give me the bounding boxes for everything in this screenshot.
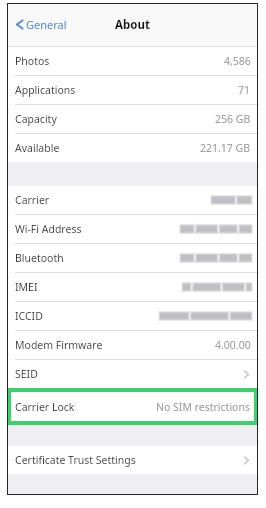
staticText: No SIM restrictions [156,400,250,414]
button[interactable]: General [14,12,69,37]
button[interactable]: Certificate Trust Settings [7,446,258,474]
button[interactable]: Photos [7,47,258,75]
staticText: IMEI [15,280,38,294]
staticText: Photos [15,54,50,68]
button[interactable]: ICCID [7,302,258,330]
button[interactable]: Wi-Fi Address [7,215,258,243]
staticText: Carrier Lock [15,400,75,414]
button[interactable]: SEID [7,360,258,388]
staticText: 4.00.00 [215,338,251,352]
button[interactable]: Carrier [7,186,258,214]
button[interactable]: Available [7,134,258,162]
staticText: Available [15,141,60,155]
other: Carrier Lock highlight [7,388,258,425]
staticText: Bluetooth [15,251,64,265]
staticText: Certificate Trust Settings [15,453,136,467]
button[interactable]: Bluetooth [7,244,258,272]
staticText: SEID [15,367,38,381]
staticText: Carrier [15,193,50,207]
staticText: 4,586 [224,54,251,68]
staticText: 221.17 GB [200,141,251,155]
button[interactable]: Applications [7,76,258,104]
staticText: 71 [238,83,251,97]
button[interactable]: Carrier Lock [7,388,258,425]
staticText: ICCID [15,309,43,323]
staticText: General [26,17,67,32]
button[interactable]: Capacity [7,105,258,133]
staticText: Wi-Fi Address [15,222,82,236]
staticText: Capacity [15,112,57,126]
button[interactable]: IMEI [7,273,258,301]
staticText: About [115,17,150,33]
staticText: Modem Firmware [15,338,103,352]
staticText: Applications [15,83,76,97]
button[interactable]: Modem Firmware [7,331,258,359]
staticText: 256 GB [215,112,251,126]
